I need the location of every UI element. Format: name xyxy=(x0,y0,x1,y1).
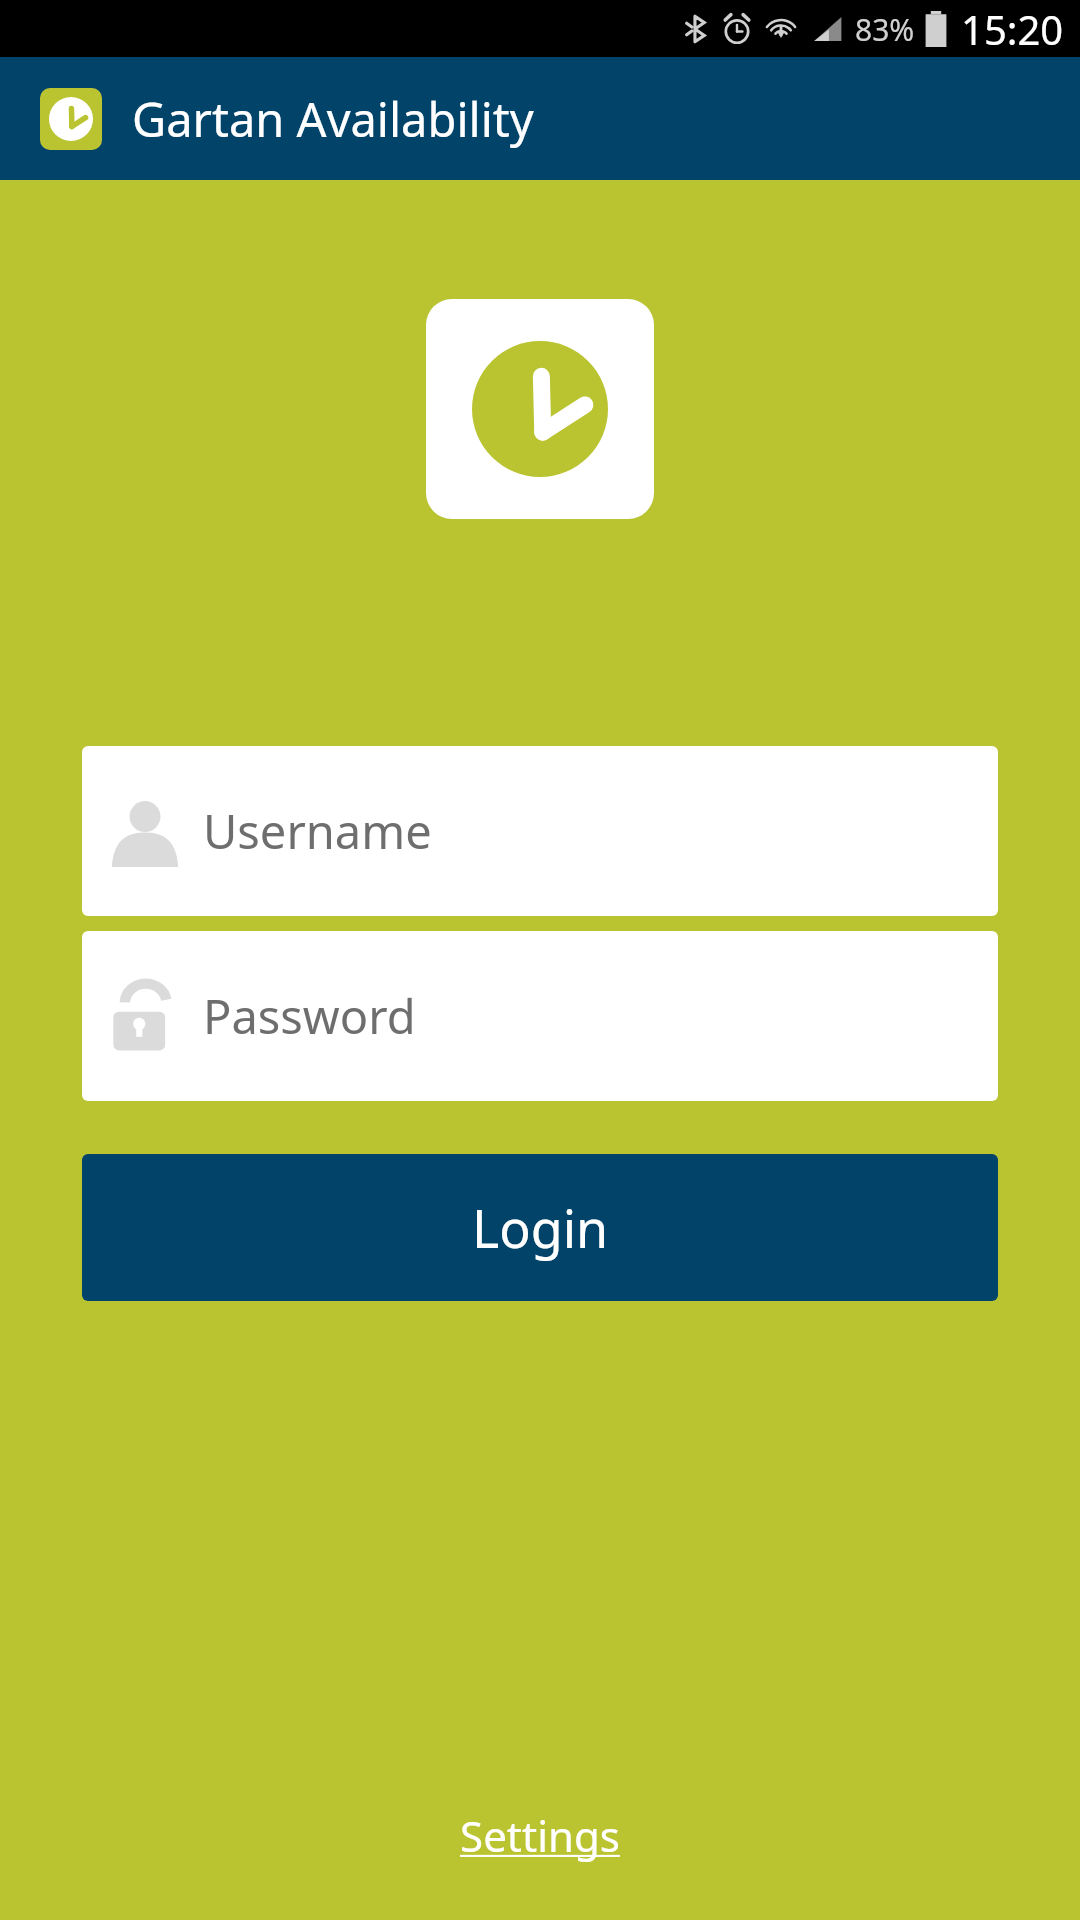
staticText: 15:20 xyxy=(961,2,1064,56)
staticText: Username xyxy=(203,799,432,863)
staticText: Login xyxy=(472,1192,609,1263)
button[interactable]: Password xyxy=(82,931,998,1101)
staticText: 83% xyxy=(855,9,915,50)
staticText: Settings xyxy=(460,1807,620,1864)
staticText: Gartan Availability xyxy=(132,87,534,151)
button[interactable]: Login xyxy=(82,1154,998,1301)
button[interactable]: Username xyxy=(82,746,998,916)
staticText: Password xyxy=(203,984,416,1048)
button[interactable]: App icon xyxy=(40,88,102,150)
button[interactable]: Settings xyxy=(430,1793,650,1878)
